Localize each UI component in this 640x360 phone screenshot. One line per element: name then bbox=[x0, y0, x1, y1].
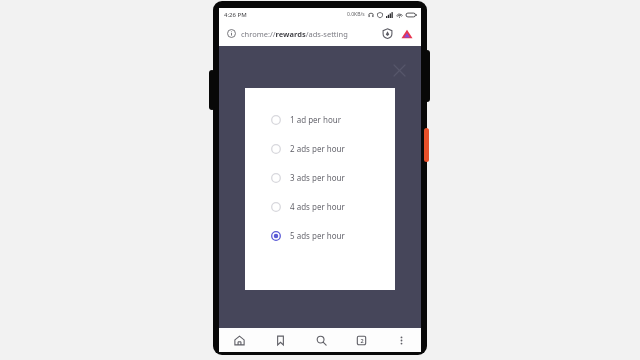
staticText: 1 ad per hour bbox=[290, 114, 341, 125]
button[interactable]: More options bbox=[381, 328, 421, 352]
button[interactable]: 1 ad per hour bbox=[245, 109, 395, 130]
button[interactable]: Search bbox=[301, 328, 341, 352]
button[interactable]: chrome://rewards/ads-setting bbox=[241, 29, 379, 39]
button[interactable]: 5 ads per hour bbox=[245, 225, 395, 246]
staticText: 2 bbox=[360, 337, 364, 344]
button[interactable]: Home bbox=[219, 328, 260, 352]
button[interactable]: 2 ads per hour bbox=[245, 138, 395, 159]
staticText: 3 ads per hour bbox=[290, 172, 345, 183]
button[interactable]: Close bbox=[390, 61, 408, 79]
staticText: chrome://rewards/ads-setting bbox=[241, 29, 348, 39]
button[interactable]: Brave Rewards bbox=[400, 27, 414, 41]
button[interactable]: 4 ads per hour bbox=[245, 196, 395, 217]
button[interactable]: Page info bbox=[226, 28, 237, 39]
button[interactable]: Brave Shields bbox=[381, 27, 394, 40]
button[interactable]: Tabs bbox=[341, 328, 381, 352]
staticText: 4:26 PM bbox=[224, 11, 247, 19]
staticText: 4 ads per hour bbox=[290, 201, 345, 212]
staticText: 2 ads per hour bbox=[290, 143, 345, 154]
staticText: 5 ads per hour bbox=[290, 230, 345, 241]
button[interactable]: 3 ads per hour bbox=[245, 167, 395, 188]
button[interactable]: Bookmarks bbox=[260, 328, 301, 352]
staticText: 0.0KB/s bbox=[347, 11, 365, 18]
